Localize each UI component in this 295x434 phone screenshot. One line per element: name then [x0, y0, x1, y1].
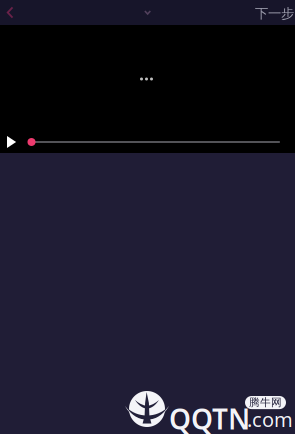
button[interactable]: Back — [0, 0, 20, 25]
staticText: .com — [247, 406, 293, 433]
button[interactable]: 下一步 — [255, 0, 295, 25]
button[interactable]: Play — [0, 132, 23, 152]
staticText: 腾牛网 — [249, 396, 282, 409]
button[interactable]: Expand — [134, 0, 160, 25]
staticText: 下一步 — [255, 5, 294, 22]
staticText: QQTN — [169, 400, 250, 434]
